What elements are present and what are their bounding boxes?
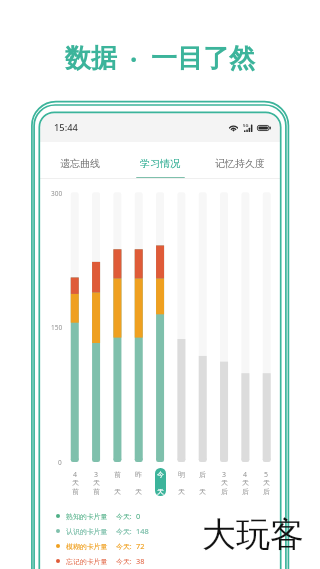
button[interactable]: 熟知的卡片量 [56, 509, 141, 523]
staticText: 天 [178, 487, 185, 496]
staticText: 数据 [65, 42, 117, 75]
staticText: 今天: [116, 557, 132, 566]
staticText: 大玩客 [202, 513, 304, 556]
staticText: 4 [73, 470, 78, 480]
button[interactable] [133, 468, 144, 496]
staticText: 5G [243, 123, 249, 129]
staticText: 今天: [116, 512, 132, 521]
button[interactable] [219, 468, 230, 496]
staticText: 15:44 [54, 121, 78, 134]
staticText: 认识的卡片量 [66, 527, 108, 536]
button[interactable] [91, 468, 102, 496]
staticText: 天 [263, 478, 270, 487]
button[interactable] [197, 468, 208, 496]
button[interactable]: 认识的卡片量 [56, 524, 149, 538]
staticText: 38 [136, 556, 145, 566]
staticText: 遗忘曲线 [60, 157, 100, 170]
staticText: 148 [136, 526, 149, 536]
staticText: 天 [93, 478, 100, 487]
staticText: 天 [114, 487, 121, 496]
staticText: 天 [221, 478, 228, 487]
staticText: 模糊的卡片量 [66, 542, 108, 551]
staticText: 今 [157, 470, 164, 479]
staticText: 天 [72, 478, 79, 487]
staticText: 学习情况 [140, 157, 180, 170]
button[interactable]: 模糊的卡片量 [56, 539, 145, 553]
staticText: · [130, 41, 138, 76]
staticText: 昨 [135, 470, 142, 479]
button[interactable]: 忘记的卡片量 [56, 554, 145, 568]
staticText: 前 [72, 487, 79, 496]
staticText: 4 [243, 470, 248, 480]
staticText: 0 [58, 458, 62, 467]
button[interactable] [70, 468, 81, 496]
staticText: 后 [199, 470, 206, 479]
staticText: 后 [221, 487, 228, 496]
staticText: 后 [242, 487, 249, 496]
staticText: 今天: [116, 542, 132, 551]
staticText: 天 [199, 487, 206, 496]
staticText: 后 [263, 487, 270, 496]
button[interactable]: 遗忘曲线 [40, 142, 120, 179]
button[interactable] [155, 468, 166, 496]
staticText: 前 [114, 470, 121, 479]
staticText: 150 [51, 323, 63, 332]
staticText: 天 [135, 487, 142, 496]
staticText: 一目了然 [151, 42, 255, 75]
staticText: 忘记的卡片量 [66, 557, 108, 566]
staticText: 天 [157, 487, 164, 496]
staticText: 0 [136, 511, 141, 521]
button[interactable] [261, 468, 272, 496]
staticText: 3 [94, 470, 99, 480]
staticText: 明 [178, 470, 185, 479]
staticText: 天 [242, 478, 249, 487]
staticText: 记忆持久度 [215, 157, 265, 170]
staticText: 300 [51, 189, 63, 198]
button[interactable]: 学习情况 [120, 142, 200, 179]
button[interactable] [176, 468, 187, 496]
staticText: 熟知的卡片量 [66, 512, 108, 521]
staticText: 3 [222, 470, 227, 480]
staticText: 前 [93, 487, 100, 496]
staticText: 今天: [116, 527, 132, 536]
staticText: 5 [264, 470, 269, 480]
button[interactable]: 记忆持久度 [200, 142, 280, 179]
button[interactable] [112, 468, 123, 496]
button[interactable] [240, 468, 251, 496]
staticText: 72 [136, 541, 145, 551]
